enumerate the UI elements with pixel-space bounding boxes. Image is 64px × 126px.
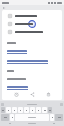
button[interactable] [4, 12, 60, 20]
button[interactable] [42, 107, 47, 113]
button[interactable] [30, 107, 35, 113]
button[interactable]: Share [24, 90, 40, 98]
button[interactable]: Delete [40, 90, 56, 98]
button[interactable] [12, 107, 17, 113]
button[interactable] [10, 114, 14, 121]
button[interactable] [6, 107, 11, 113]
button[interactable] [18, 107, 23, 113]
button[interactable] [55, 114, 63, 121]
button[interactable] [4, 28, 60, 36]
button[interactable] [50, 114, 54, 121]
button[interactable]: Remind me [8, 90, 24, 98]
button[interactable]: Back [2, 6, 6, 10]
button[interactable]: Space [15, 114, 49, 121]
button[interactable] [24, 107, 29, 113]
button[interactable] [4, 20, 60, 28]
button[interactable] [1, 107, 5, 113]
button[interactable] [36, 107, 41, 113]
button[interactable] [48, 107, 52, 113]
button[interactable] [1, 114, 9, 121]
